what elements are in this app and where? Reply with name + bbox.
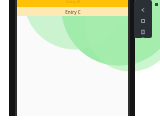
button[interactable]: Screenshot	[139, 28, 147, 36]
staticText: Entry C	[65, 9, 81, 15]
button[interactable]: Back	[139, 6, 147, 14]
button[interactable]: Rotate left	[139, 17, 147, 25]
button[interactable]: Entry C	[17, 7, 128, 16]
staticText: Entry B	[66, 0, 80, 4]
